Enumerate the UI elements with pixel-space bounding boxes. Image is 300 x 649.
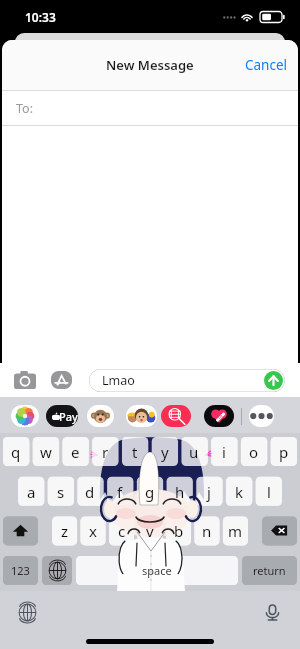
button[interactable]: Photos: [11, 405, 39, 427]
button[interactable]: i: [211, 437, 237, 466]
button[interactable]: a: [18, 477, 44, 506]
button[interactable]: n: [194, 516, 219, 545]
staticText: y: [161, 442, 169, 462]
button[interactable]: w: [33, 437, 59, 466]
button[interactable]: App Store: [51, 371, 72, 389]
staticText: i: [222, 442, 226, 462]
staticText: o: [249, 442, 259, 462]
button[interactable]: Shift: [3, 516, 38, 545]
button[interactable]: Dictation: [263, 603, 282, 622]
staticText: k: [235, 482, 244, 502]
staticText: q: [11, 442, 21, 462]
button[interactable]: d: [77, 477, 103, 506]
button[interactable]: f: [107, 477, 133, 506]
staticText: u: [189, 442, 199, 462]
staticText: l: [267, 482, 271, 502]
staticText: Cancel: [245, 56, 288, 74]
staticText: v: [146, 521, 154, 541]
button[interactable]: r: [92, 437, 118, 466]
staticText: b: [174, 521, 184, 541]
button[interactable]: Lmao: [89, 369, 285, 392]
staticText: t: [132, 442, 138, 462]
button[interactable]: More apps: [249, 405, 274, 427]
button[interactable]: e: [62, 437, 88, 466]
staticText: New Message: [106, 56, 194, 74]
staticText: p: [279, 442, 289, 462]
staticText: x: [89, 521, 97, 541]
button[interactable]: v: [137, 516, 162, 545]
button[interactable]: Switch keyboard: [18, 603, 37, 622]
staticText: c: [118, 521, 126, 541]
button[interactable]: j: [196, 477, 222, 506]
button[interactable]: q: [3, 437, 29, 466]
button[interactable]: 123: [3, 556, 38, 585]
staticText: r: [102, 442, 109, 462]
button[interactable]: space: [76, 556, 238, 585]
staticText: Pay: [59, 409, 78, 424]
button[interactable]: g: [137, 477, 163, 506]
button[interactable]: y: [152, 437, 178, 466]
button[interactable]: h: [167, 477, 193, 506]
staticText: 123: [11, 563, 30, 578]
button[interactable]: Backspace: [262, 516, 297, 545]
button[interactable]: Digital Touch: [204, 405, 234, 427]
staticText: g: [145, 482, 155, 502]
staticText: z: [61, 521, 69, 541]
button[interactable]: Images: [161, 405, 191, 427]
staticText: s: [57, 482, 65, 502]
staticText: 10:33: [25, 9, 56, 25]
staticText: n: [202, 521, 212, 541]
staticText: space: [142, 563, 172, 578]
button[interactable]: return: [242, 556, 297, 585]
staticText: m: [228, 521, 243, 541]
staticText: w: [40, 442, 52, 462]
button[interactable]: u: [181, 437, 207, 466]
staticText: e: [71, 442, 80, 462]
button[interactable]: b: [166, 516, 191, 545]
button[interactable]: Memoji: [87, 405, 114, 427]
button[interactable]: Memoji stickers: [126, 405, 157, 427]
button[interactable]: k: [226, 477, 252, 506]
button[interactable]: s: [48, 477, 74, 506]
staticText: return: [253, 563, 286, 578]
button[interactable]: l: [256, 477, 282, 506]
staticText: f: [117, 482, 123, 502]
staticText: To:: [16, 100, 33, 117]
button[interactable]: c: [109, 516, 134, 545]
button[interactable]: Cancel: [235, 48, 298, 82]
staticText: a: [27, 482, 36, 502]
staticText: h: [175, 482, 185, 502]
button[interactable]: x: [80, 516, 105, 545]
button[interactable]: Apple Pay: [46, 405, 78, 427]
button[interactable]: Camera: [14, 371, 36, 389]
button[interactable]: z: [52, 516, 77, 545]
button[interactable]: t: [122, 437, 148, 466]
button[interactable]: p: [271, 437, 297, 466]
button[interactable]: To:: [2, 91, 298, 126]
button[interactable]: m: [223, 516, 248, 545]
button[interactable]: Send: [264, 371, 283, 390]
staticText: Lmao: [102, 372, 135, 389]
staticText: j: [207, 482, 211, 502]
staticText: d: [85, 482, 95, 502]
button[interactable]: Switch keyboard: [42, 556, 72, 585]
button[interactable]: o: [241, 437, 267, 466]
